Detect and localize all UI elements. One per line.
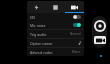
- button[interactable]: Trig audio: [27, 30, 84, 38]
- button[interactable]: Video mode: [94, 36, 106, 44]
- button[interactable]: Mic noise: [27, 21, 84, 29]
- button[interactable]: Advncd codec: [27, 48, 84, 56]
- staticText: Normal: [70, 32, 81, 36]
- button[interactable]: Tab: [46, 1, 65, 13]
- staticText: Mono: [72, 50, 81, 54]
- staticText: Trig audio: [30, 32, 47, 37]
- button[interactable]: Selected tab: [65, 1, 84, 13]
- staticText: EIS: [30, 15, 36, 20]
- staticText: Option camer: [30, 41, 53, 46]
- button[interactable]: Option camer: [27, 39, 84, 47]
- staticText: Mic noise: [30, 23, 46, 28]
- button[interactable]: Shutter: [94, 20, 106, 32]
- staticText: Advncd codec: [30, 50, 53, 55]
- button[interactable]: Tab: [27, 1, 46, 13]
- button[interactable]: EIS: [27, 13, 84, 21]
